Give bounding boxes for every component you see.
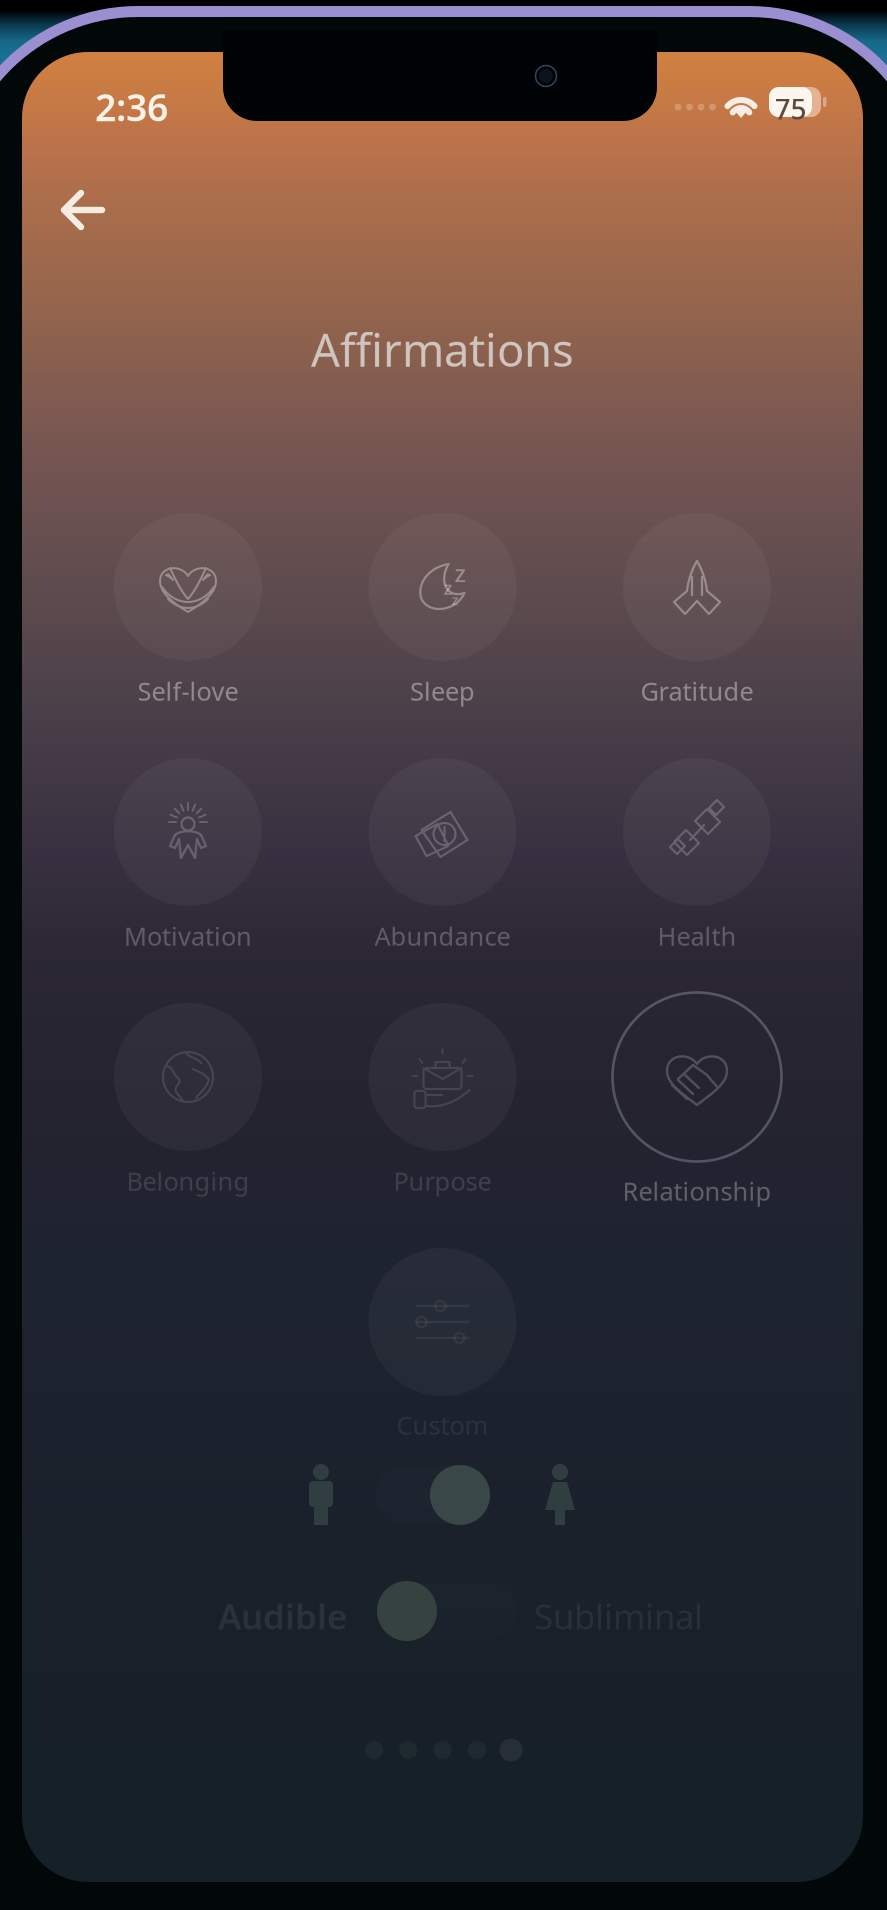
staticText: 75 — [774, 90, 806, 127]
staticText: Gratitude — [640, 674, 753, 708]
button[interactable]: Belonging — [22, 52, 863, 1882]
staticText: Purpose — [393, 1164, 491, 1198]
staticText: Custom — [396, 1408, 488, 1442]
staticText: Belonging — [126, 1164, 249, 1198]
staticText: Audible — [218, 1593, 347, 1639]
staticText: Sleep — [410, 674, 475, 708]
staticText: Affirmations — [311, 319, 574, 379]
staticText: z — [451, 590, 458, 609]
button[interactable]: Custom — [22, 52, 863, 1882]
staticText: Self-love — [137, 674, 238, 708]
staticText: z — [454, 557, 465, 589]
staticText: Subliminal — [534, 1593, 703, 1639]
button[interactable]: Relationship — [22, 52, 863, 1882]
button[interactable]: Voice gender — [375, 1466, 490, 1524]
button[interactable]: Purpose — [22, 52, 863, 1882]
button[interactable]: Motivation — [22, 52, 863, 1882]
button[interactable]: Back — [40, 167, 126, 253]
button[interactable]: Audio mode — [377, 1581, 517, 1641]
staticText: z — [443, 575, 452, 600]
button[interactable]: Self-love — [22, 52, 863, 1882]
staticText: Abundance — [374, 919, 510, 953]
button[interactable]: Gratitude — [22, 52, 863, 1882]
staticText: Motivation — [124, 919, 252, 953]
staticText: Health — [657, 919, 736, 953]
staticText: 2:36 — [95, 82, 168, 132]
button[interactable]: Health — [22, 52, 863, 1882]
button[interactable]: Abundance — [22, 52, 863, 1882]
button[interactable]: z — [22, 52, 863, 1882]
staticText: Relationship — [622, 1174, 771, 1208]
